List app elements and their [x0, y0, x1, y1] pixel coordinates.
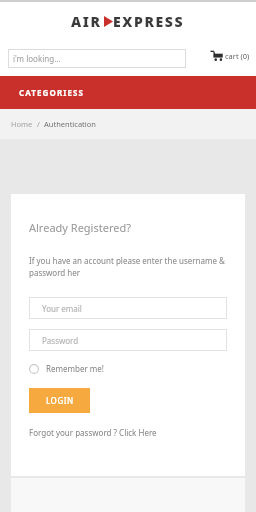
staticText: Your email [42, 303, 82, 314]
button[interactable]: Air Express home [71, 12, 185, 31]
staticText: Forgot your password ? Click Here [29, 427, 157, 438]
button[interactable]: Remember me! [29, 363, 104, 374]
staticText: AIR [71, 12, 102, 31]
staticText: i'm looking... [13, 53, 61, 64]
button[interactable]: LOGIN [29, 388, 90, 413]
staticText: LOGIN [46, 395, 74, 406]
staticText: Password [42, 335, 79, 346]
button[interactable]: Forgot your password ? Click Here [29, 427, 157, 438]
button[interactable]: Password [29, 329, 227, 351]
staticText: EXPRESS [113, 12, 185, 31]
other: Shopping cart [210, 49, 223, 62]
staticText: Home [11, 119, 33, 129]
staticText: CATEGORIESS [19, 87, 85, 98]
staticText: If you have an account please enter the … [29, 255, 225, 279]
staticText: Already Registered? [29, 220, 131, 235]
staticText: Remember me! [46, 363, 104, 374]
button[interactable]: Home [11, 119, 33, 129]
staticText: Authentication [44, 119, 96, 129]
button[interactable]: CATEGORIESS [0, 76, 256, 109]
staticText: / [33, 119, 44, 129]
button[interactable]: Shopping cart [210, 49, 250, 62]
button[interactable]: Your email [29, 297, 227, 319]
staticText: cart (0) [225, 51, 250, 61]
button[interactable]: i'm looking... [8, 49, 186, 68]
